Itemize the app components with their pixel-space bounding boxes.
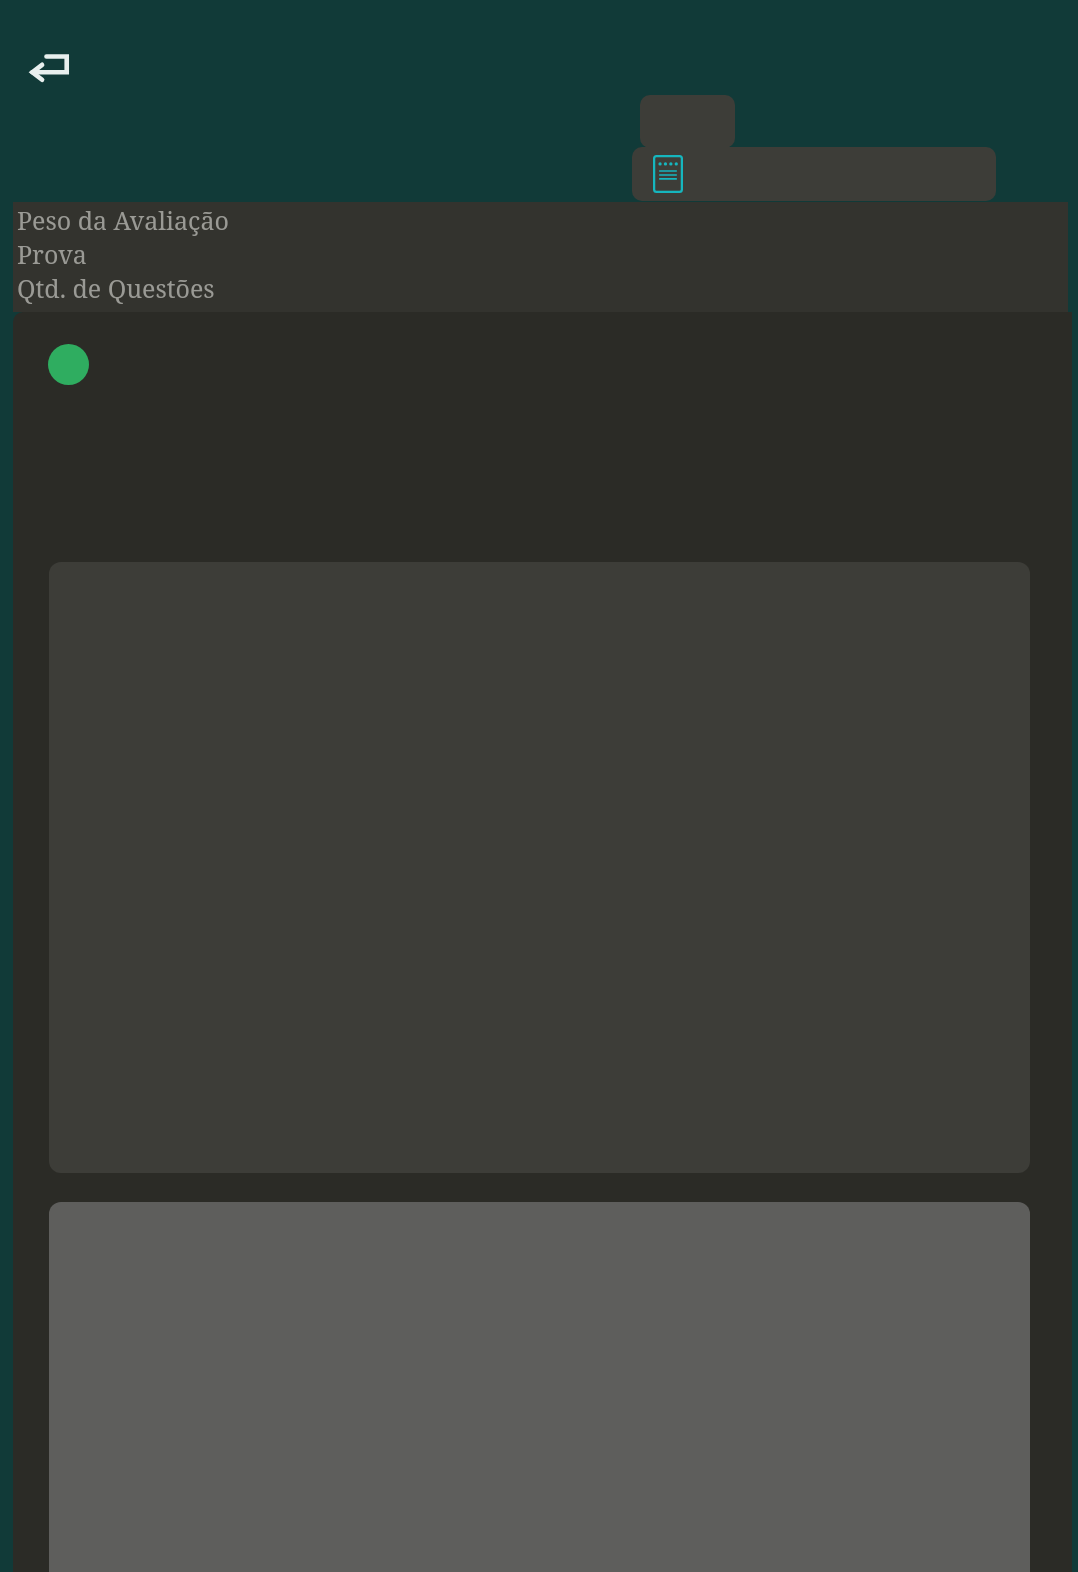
button[interactable]: Voltar	[16, 34, 84, 100]
staticText: Peso da Avaliação	[17, 203, 229, 237]
staticText: Qtd. de Questões	[17, 271, 215, 305]
button[interactable]	[632, 147, 996, 201]
staticText: Prova	[17, 237, 87, 271]
button[interactable]	[640, 95, 735, 148]
button[interactable]: Status	[48, 344, 89, 385]
